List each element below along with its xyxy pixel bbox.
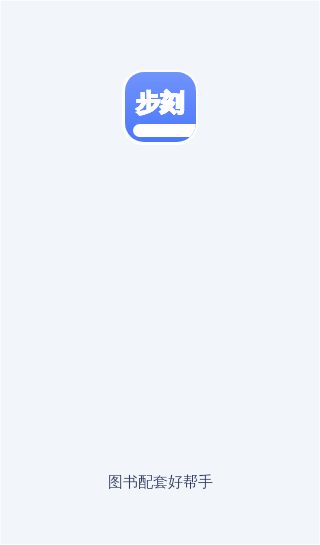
staticText: 图书配套好帮手: [108, 473, 213, 492]
staticText: 步刻: [136, 88, 184, 118]
button[interactable]: 步刻 app icon: [122, 70, 198, 145]
staticText: 步刻: [136, 88, 184, 118]
